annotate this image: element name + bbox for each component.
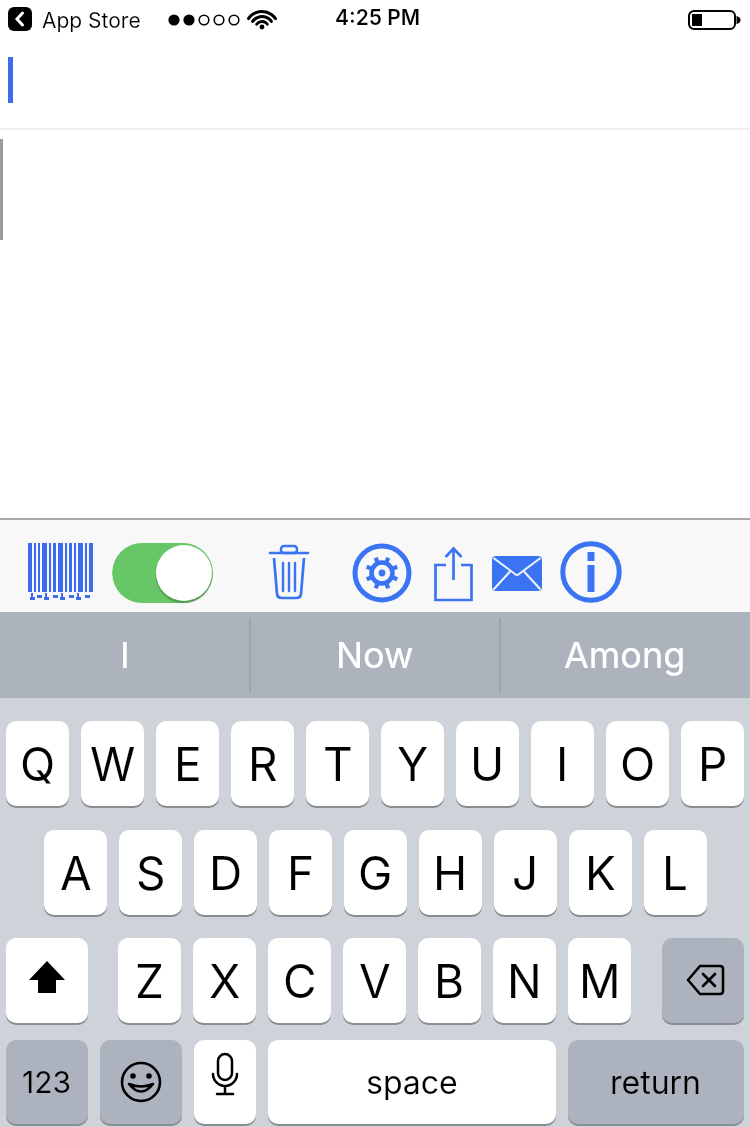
button[interactable] [6, 938, 88, 1023]
button[interactable]: E [156, 721, 219, 806]
button[interactable]: A [44, 830, 107, 915]
button[interactable] [434, 546, 473, 602]
staticText: D [209, 845, 243, 901]
button[interactable] [100, 1040, 182, 1124]
button[interactable]: B [418, 938, 481, 1023]
staticText: Y [397, 736, 429, 792]
button[interactable]: G [344, 830, 407, 915]
button[interactable]: P [681, 721, 744, 806]
button[interactable]: space [268, 1040, 556, 1124]
staticText: Z [135, 953, 164, 1009]
staticText: R [248, 736, 278, 792]
staticText: A [60, 845, 92, 901]
button[interactable]: U [456, 721, 519, 806]
staticText: Now [336, 633, 414, 677]
staticText: V [359, 953, 391, 1009]
button[interactable]: Z [118, 938, 181, 1023]
button[interactable]: O [606, 721, 669, 806]
button[interactable] [112, 542, 214, 604]
staticText: U [470, 736, 505, 792]
button[interactable]: R [231, 721, 294, 806]
staticText: E [174, 736, 202, 792]
staticText: App Store [42, 8, 141, 33]
staticText: I [120, 633, 130, 677]
staticText: 4:25 PM [335, 5, 421, 30]
button[interactable]: K [569, 830, 632, 915]
button[interactable]: Y [381, 721, 444, 806]
button[interactable]: I [531, 721, 594, 806]
button[interactable]: V [343, 938, 406, 1023]
staticText: N [507, 953, 542, 1009]
staticText: T [323, 736, 353, 792]
staticText: space [366, 1063, 458, 1102]
button[interactable]: M [568, 938, 631, 1023]
button[interactable]: 123 [6, 1040, 88, 1124]
staticText: I [556, 736, 569, 792]
button[interactable]: X [193, 938, 256, 1023]
staticText: P [698, 736, 728, 792]
staticText: L [662, 845, 689, 901]
staticText: B [434, 953, 465, 1009]
button[interactable] [352, 543, 412, 603]
button[interactable]: C [268, 938, 331, 1023]
button[interactable] [28, 541, 94, 605]
button[interactable] [492, 556, 542, 591]
staticText: return [610, 1063, 702, 1102]
button[interactable]: H [419, 830, 482, 915]
staticText: F [287, 845, 315, 901]
staticText: S [136, 845, 166, 901]
button[interactable] [662, 938, 744, 1023]
button[interactable]: T [306, 721, 369, 806]
button[interactable]: W [81, 721, 144, 806]
button[interactable]: D [194, 830, 257, 915]
staticText: Among [564, 633, 686, 677]
button[interactable]: J [494, 830, 557, 915]
button[interactable]: I [0, 612, 250, 698]
staticText: 123 [22, 1064, 72, 1100]
staticText: G [358, 845, 393, 901]
button[interactable] [194, 1040, 256, 1124]
staticText: W [90, 736, 136, 792]
staticText: O [620, 736, 656, 792]
staticText: K [585, 845, 616, 901]
button[interactable]: N [493, 938, 556, 1023]
staticText: X [209, 953, 241, 1009]
button[interactable]: L [644, 830, 707, 915]
button[interactable]: Now [250, 612, 500, 698]
staticText: Q [20, 736, 56, 792]
staticText: H [433, 845, 468, 901]
button[interactable]: S [119, 830, 182, 915]
button[interactable]: return [568, 1040, 744, 1124]
button[interactable]: Q [6, 721, 69, 806]
button[interactable]: Among [500, 612, 750, 698]
button[interactable] [8, 7, 32, 31]
button[interactable] [269, 545, 309, 601]
staticText: J [512, 845, 539, 901]
staticText: C [283, 953, 317, 1009]
staticText: M [579, 953, 621, 1009]
button[interactable] [560, 541, 622, 603]
button[interactable]: F [269, 830, 332, 915]
